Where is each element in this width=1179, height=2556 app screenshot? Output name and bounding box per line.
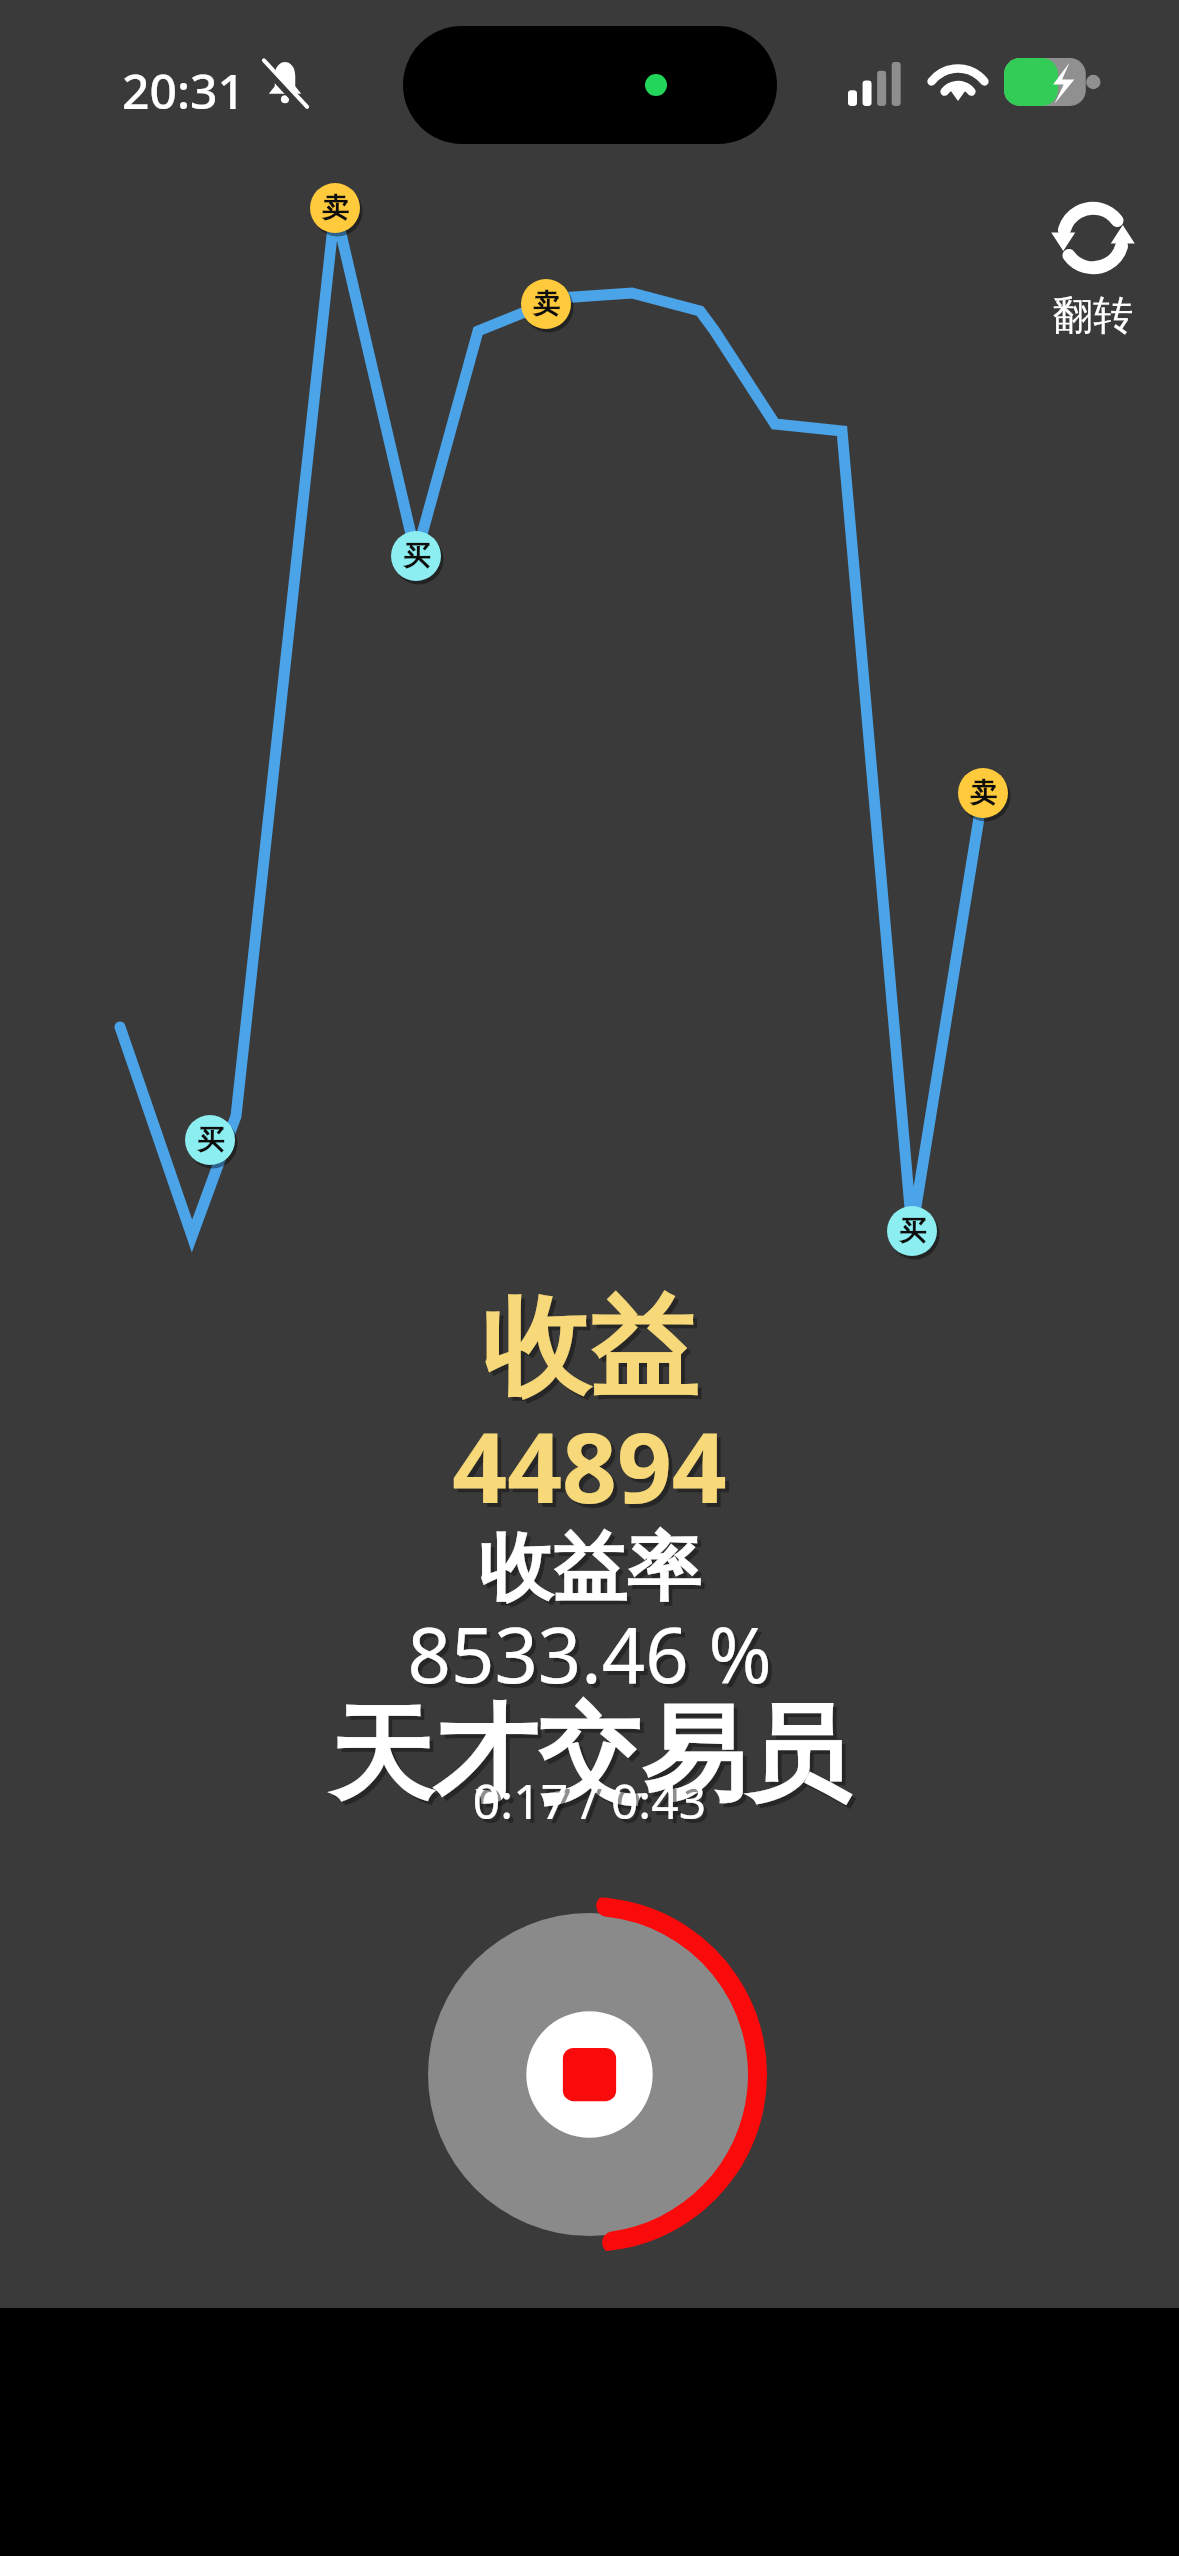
staticText: 20:31 — [122, 58, 245, 123]
button[interactable]: 停止录制 — [412, 1897, 767, 2252]
staticText: 卖 — [322, 191, 349, 225]
staticText: 卖 — [970, 776, 997, 810]
staticText: 天才交易员 — [4, 1694, 1179, 1825]
staticText: 8533.46 % — [4, 1606, 1179, 1710]
staticText: 天才交易员 — [0, 1690, 1179, 1821]
button[interactable]: 翻转 — [1018, 186, 1168, 351]
staticText: 买 — [197, 1123, 224, 1157]
staticText: 44894 — [0, 1400, 1179, 1531]
staticText: 卖 — [533, 287, 560, 321]
staticText: 买 — [403, 539, 430, 573]
staticText: 0:17 / 0:43 — [0, 1768, 1179, 1833]
staticText: 收益 — [4, 1284, 1179, 1420]
staticText: 收益率 — [4, 1526, 1179, 1619]
staticText: 翻转 — [1053, 290, 1133, 340]
staticText: 8533.46 % — [0, 1602, 1179, 1706]
staticText: 收益率 — [0, 1522, 1179, 1615]
staticText: 收益 — [0, 1280, 1179, 1416]
staticText: 0:17 / 0:43 — [4, 1772, 1179, 1837]
staticText: 44894 — [4, 1404, 1179, 1535]
staticText: 买 — [899, 1214, 926, 1248]
